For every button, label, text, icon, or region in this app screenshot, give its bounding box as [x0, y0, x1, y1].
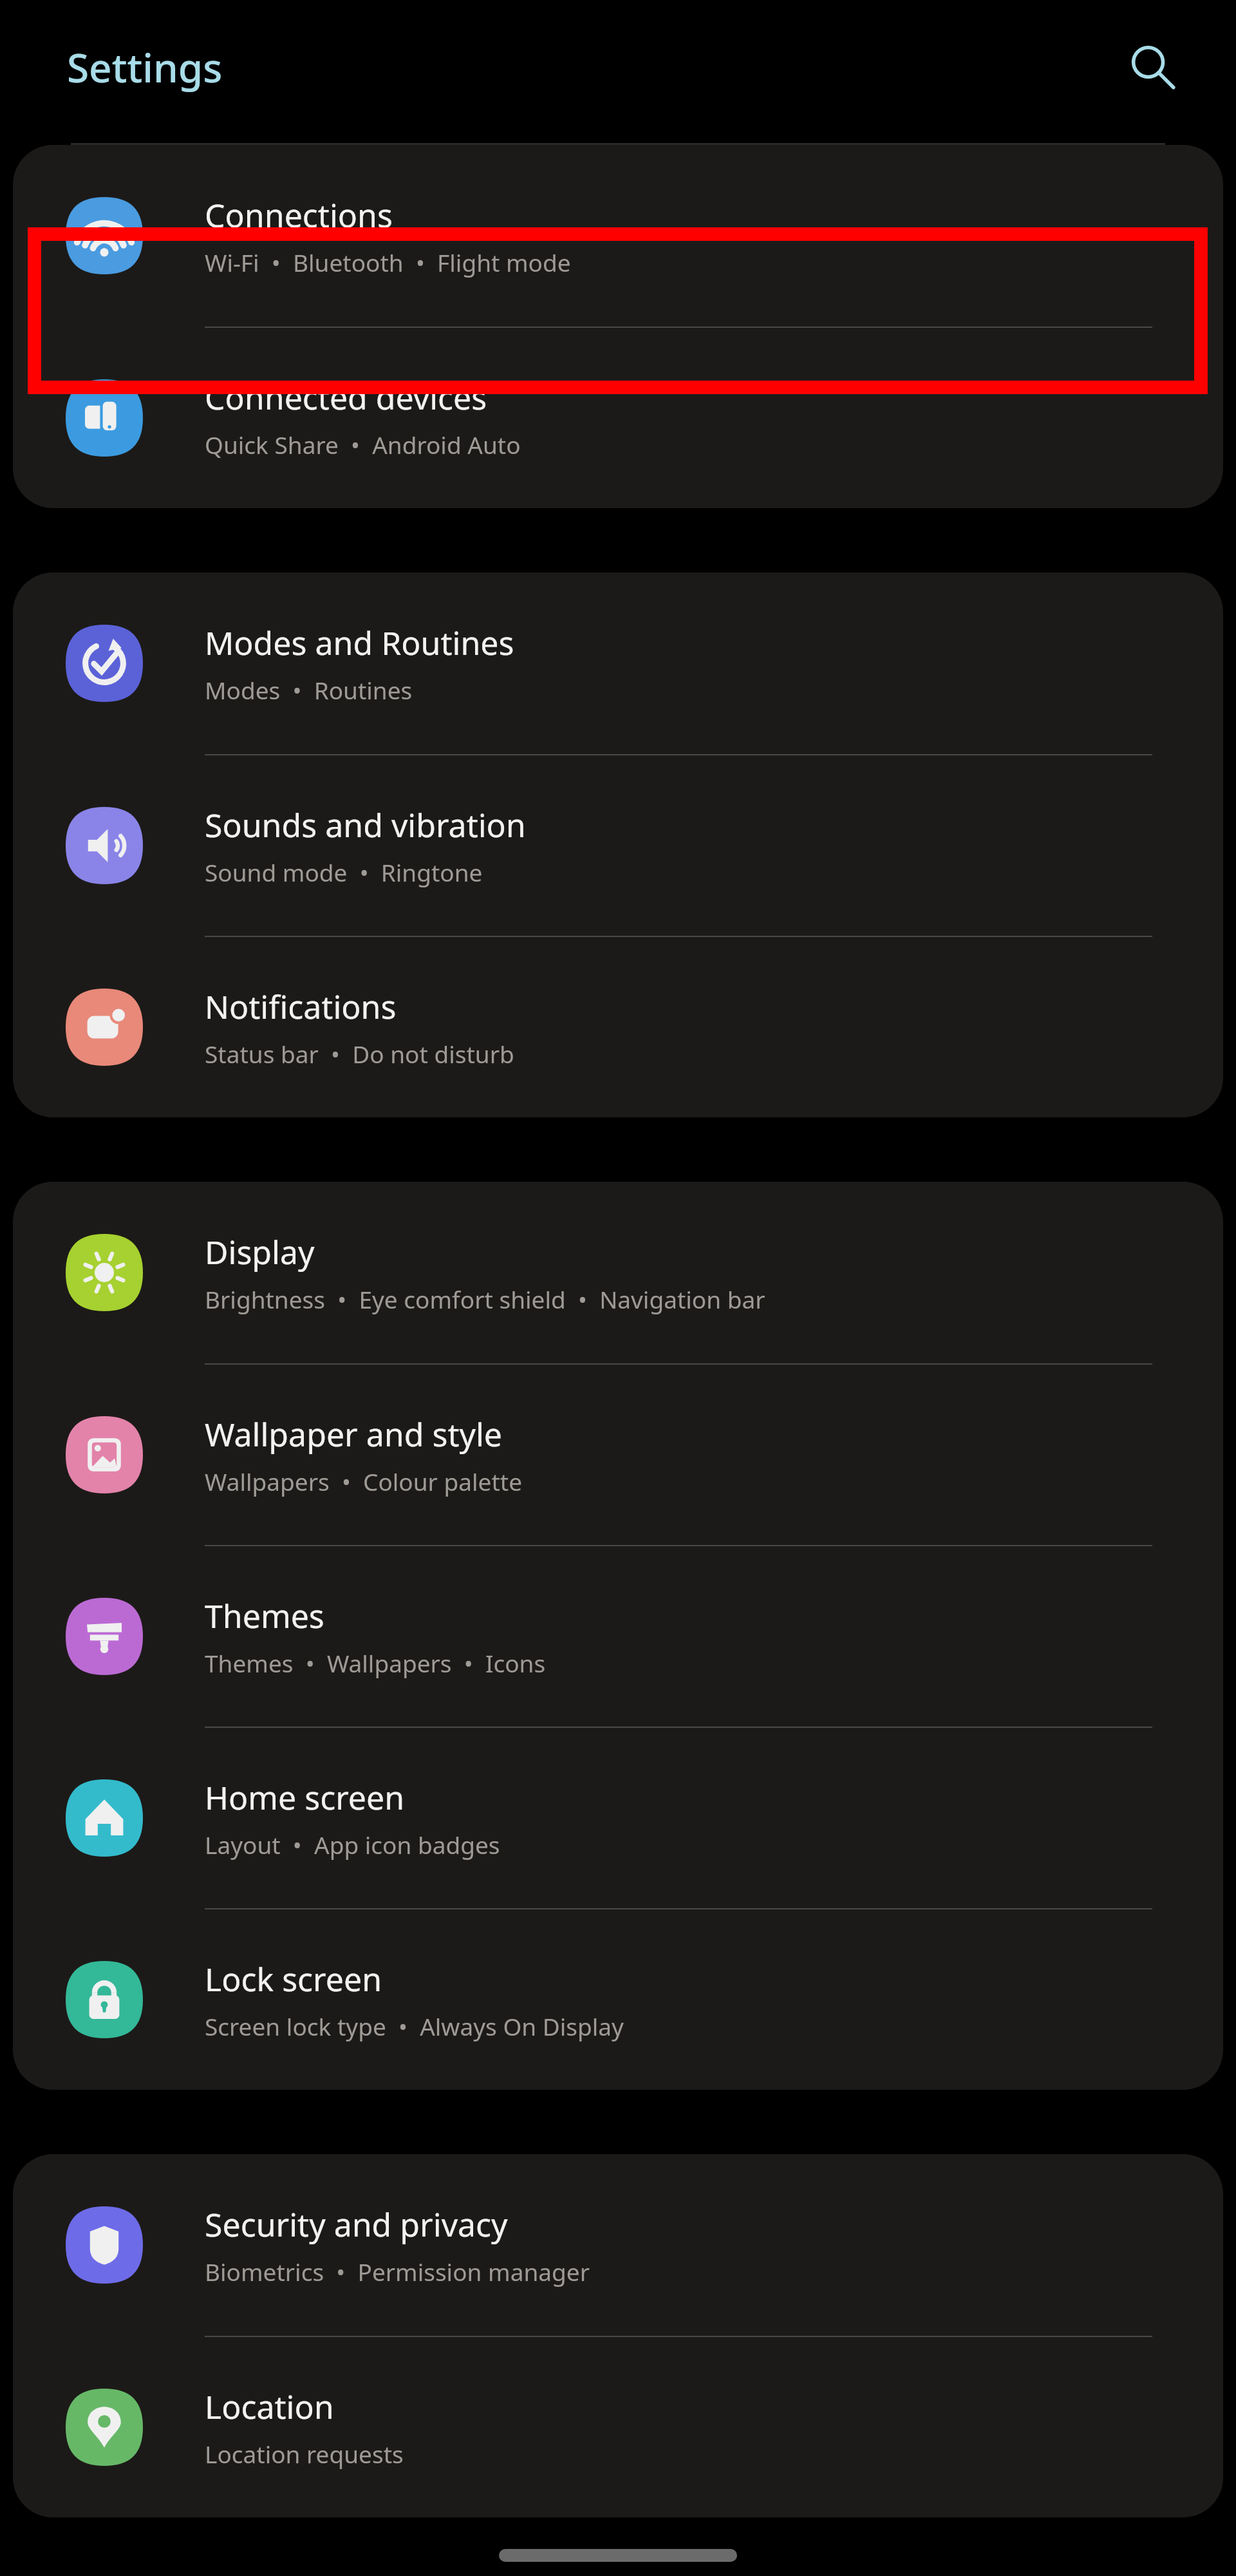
staticText: Layout • App icon badges — [205, 1828, 500, 1861]
button[interactable]: Connections — [13, 145, 1223, 327]
staticText: Security and privacy — [205, 2202, 508, 2246]
button[interactable]: Search settings — [1118, 32, 1188, 102]
staticText: Lock screen — [205, 1957, 382, 2001]
button[interactable]: Home screen — [13, 1728, 1223, 1908]
staticText: Status bar • Do not disturb — [205, 1037, 514, 1070]
staticText: Quick Share • Android Auto — [205, 428, 521, 460]
staticText: Screen lock type • Always On Display — [205, 2010, 624, 2042]
staticText: Settings — [67, 40, 223, 94]
staticText: Wallpapers • Colour palette — [205, 1465, 523, 1497]
staticText: Modes • Routines — [205, 674, 413, 706]
button[interactable]: Notifications — [13, 937, 1223, 1117]
button[interactable]: Sounds and vibration — [13, 755, 1223, 936]
staticText: Location requests — [205, 2438, 404, 2470]
staticText: Sounds and vibration — [205, 803, 526, 847]
button[interactable]: Location — [13, 2337, 1223, 2517]
button[interactable]: Themes — [13, 1546, 1223, 1727]
staticText: Biometrics • Permission manager — [205, 2255, 590, 2287]
button[interactable]: Lock screen — [13, 1909, 1223, 2090]
staticText: Themes — [205, 1594, 324, 1638]
button[interactable]: Connected devices — [13, 328, 1223, 508]
button[interactable]: Display — [13, 1182, 1223, 1363]
staticText: Themes • Wallpapers • Icons — [205, 1647, 546, 1679]
staticText: Connections — [205, 193, 393, 237]
staticText: Wallpaper and style — [205, 1412, 503, 1456]
staticText: Home screen — [205, 1776, 405, 1819]
staticText: Modes and Routines — [205, 621, 514, 665]
staticText: Brightness • Eye comfort shield • Naviga… — [205, 1283, 765, 1315]
staticText: Notifications — [205, 985, 397, 1028]
staticText: Wi-Fi • Bluetooth • Flight mode — [205, 246, 571, 278]
button[interactable]: Security and privacy — [13, 2154, 1223, 2336]
staticText: Location — [205, 2385, 334, 2429]
button[interactable]: Wallpaper and style — [13, 1365, 1223, 1545]
staticText: Sound mode • Ringtone — [205, 856, 483, 888]
button[interactable]: Modes and Routines — [13, 573, 1223, 754]
staticText: Connected devices — [205, 375, 487, 419]
staticText: Display — [205, 1230, 315, 1274]
